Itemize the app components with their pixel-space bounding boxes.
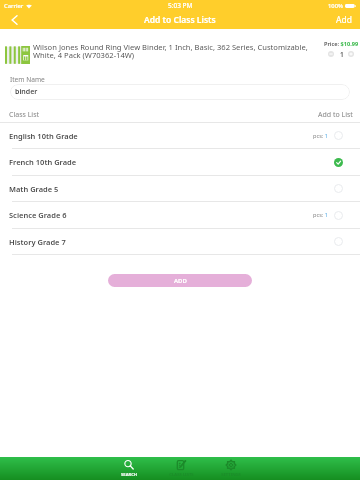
staticText: Math Grade 5 bbox=[9, 184, 59, 194]
staticText: 1 bbox=[340, 50, 344, 59]
button[interactable]: English 10th Grade bbox=[0, 123, 360, 149]
button[interactable]: ADD bbox=[108, 274, 252, 287]
staticText: binder bbox=[15, 87, 38, 97]
staticText: History Grade 7 bbox=[9, 237, 66, 247]
staticText: pcs: 1 bbox=[313, 211, 328, 219]
button[interactable]: binder bbox=[10, 84, 350, 100]
button[interactable]: Add to List bbox=[318, 110, 353, 120]
button[interactable]: History Grade 7 bbox=[0, 229, 360, 255]
staticText: Item Name bbox=[10, 75, 45, 84]
staticText: Add to List bbox=[318, 110, 353, 120]
staticText: 5:03 PM bbox=[168, 1, 193, 10]
staticText: SEARCH bbox=[121, 472, 137, 478]
button[interactable]: SETTINGS bbox=[205, 457, 257, 480]
staticText: 100% bbox=[328, 2, 343, 10]
staticText: Carrier bbox=[4, 2, 24, 10]
button[interactable]: Add bbox=[336, 11, 352, 29]
button[interactable]: Science Grade 6 bbox=[0, 202, 360, 229]
staticText: Price: $10.99 bbox=[324, 40, 359, 48]
staticText: Add bbox=[336, 14, 352, 26]
staticText: English 10th Grade bbox=[9, 131, 78, 141]
button[interactable]: SEARCH bbox=[103, 457, 155, 480]
button[interactable]: Decrease quantity bbox=[328, 51, 334, 57]
staticText: Science Grade 6 bbox=[9, 210, 67, 220]
staticText: SETTINGS bbox=[221, 472, 241, 478]
staticText: Class List bbox=[9, 110, 40, 120]
staticText: CLASS LISTS bbox=[169, 472, 194, 478]
staticText: French 10th Grade bbox=[9, 157, 77, 167]
button[interactable]: Back bbox=[0, 11, 26, 29]
button[interactable]: French 10th Grade bbox=[0, 149, 360, 176]
staticText: ADD bbox=[174, 277, 187, 285]
button[interactable]: Increase quantity bbox=[348, 51, 354, 57]
staticText: pcs: 1 bbox=[313, 132, 328, 140]
staticText: Wilson Jones Round Ring View Binder, 1 I… bbox=[33, 42, 311, 61]
button[interactable]: Math Grade 5 bbox=[0, 176, 360, 202]
staticText: Add to Class Lists bbox=[144, 14, 216, 26]
button[interactable]: CLASS LISTS bbox=[155, 457, 207, 480]
